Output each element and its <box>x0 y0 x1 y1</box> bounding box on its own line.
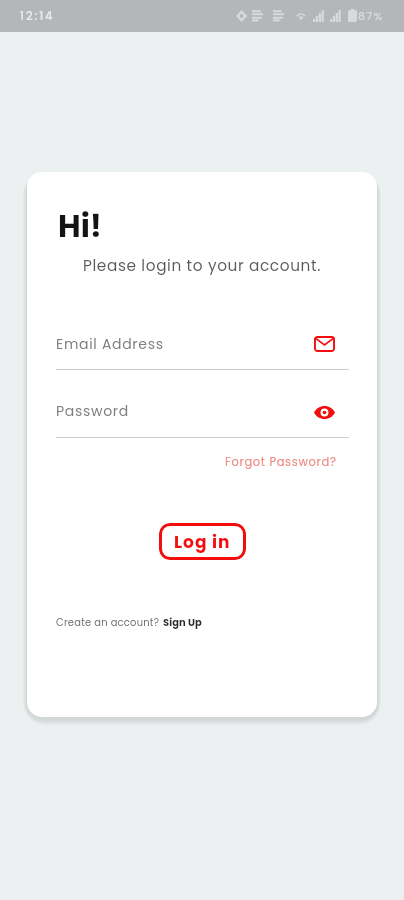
staticText: Forgot Password? <box>225 454 337 470</box>
staticText: Create an account? <box>56 616 163 630</box>
staticText: 87% <box>358 8 384 23</box>
staticText: Hi! <box>58 204 102 247</box>
button[interactable]: Forgot Password? <box>222 451 340 473</box>
staticText: 12:14 <box>20 8 55 24</box>
staticText: Email Address <box>56 334 164 354</box>
button[interactable]: Email <box>308 328 340 360</box>
button[interactable]: Sign Up <box>163 616 202 630</box>
button[interactable]: Log in <box>159 523 246 560</box>
button[interactable]: Email Address <box>56 322 349 370</box>
button[interactable]: Show password <box>308 396 340 428</box>
button[interactable]: Password <box>56 389 349 438</box>
staticText: Log in <box>174 530 231 554</box>
staticText: Password <box>56 401 129 421</box>
staticText: Please login to your account. <box>27 255 377 276</box>
